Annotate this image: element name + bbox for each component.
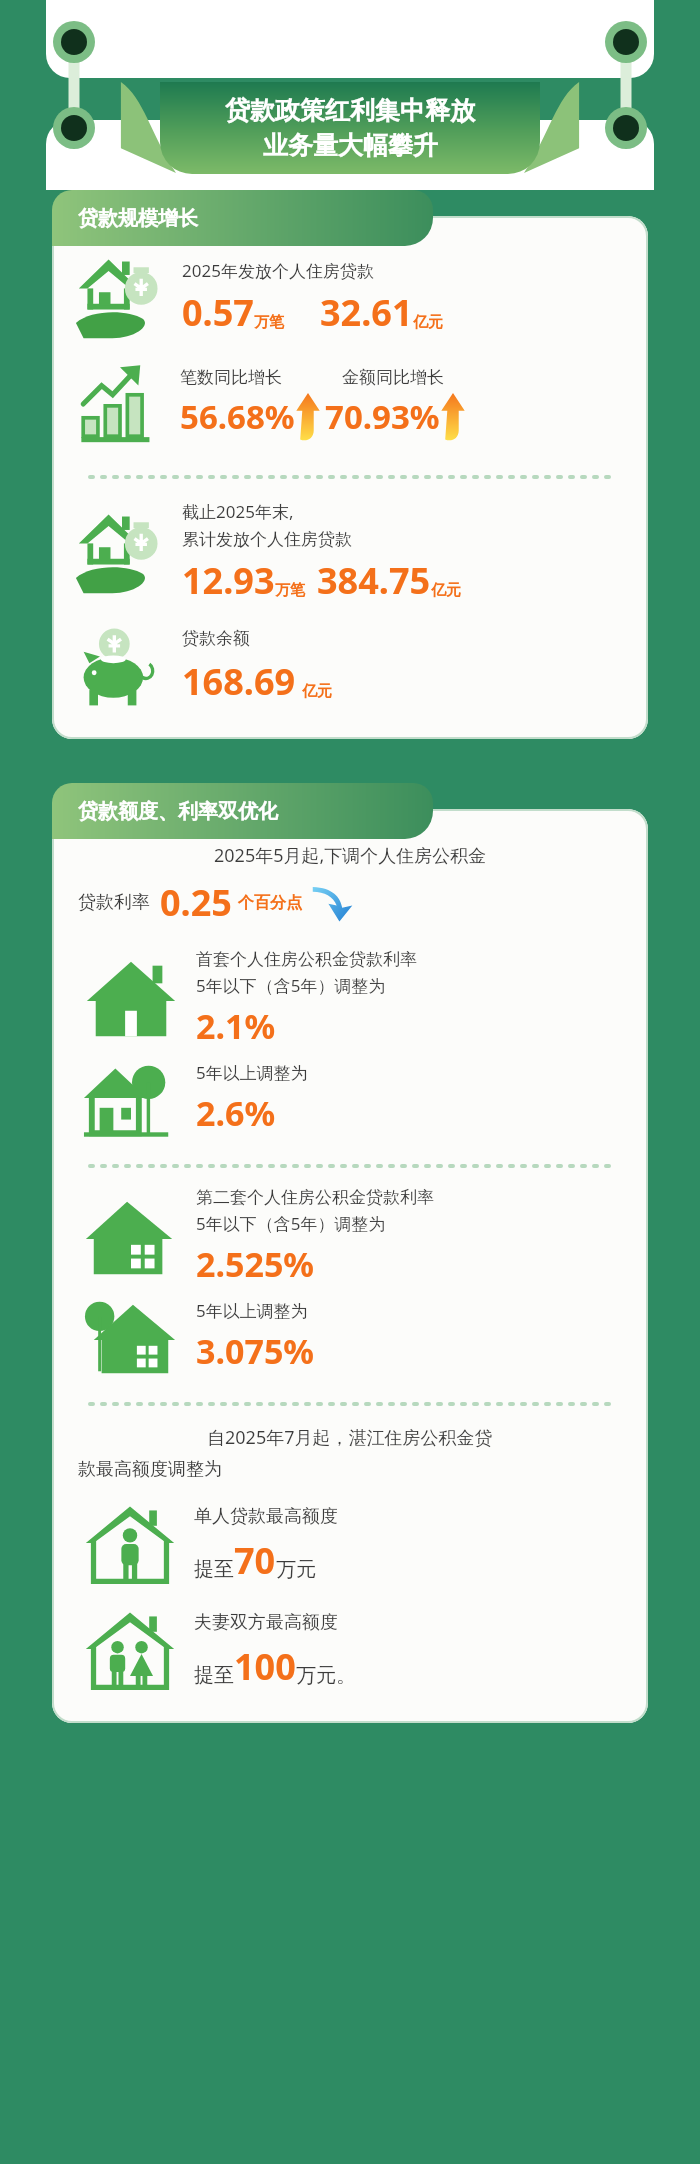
other: 单人贷款最高额度 [82, 1497, 178, 1593]
staticText: 笔数同比增长 [180, 367, 282, 388]
staticText: 56.68% [180, 394, 295, 439]
staticText: 提至 [194, 1663, 234, 1688]
button[interactable]: 单人贷款最高额度 [82, 1497, 628, 1593]
other: 住房贷款 [74, 250, 170, 346]
staticText: 384.75 [317, 556, 431, 605]
button[interactable]: 房屋 [82, 949, 628, 1049]
staticText: 5年以下（含5年）调整为 [196, 974, 386, 997]
button[interactable]: 房屋 [82, 1287, 628, 1385]
staticText: 贷款规模增长 [78, 206, 198, 231]
button[interactable]: 贷款额度、利率双优化 [52, 783, 433, 839]
staticText: 2025年5月起,下调个人住房公积金 [214, 843, 487, 868]
button[interactable]: 房屋 [82, 1049, 628, 1147]
other: 房屋 [82, 1188, 180, 1286]
staticText: 业务量大幅攀升 [263, 130, 438, 161]
staticText: 0.57 [182, 288, 254, 337]
staticText: 5年以上调整为 [196, 1299, 308, 1322]
staticText: 5年以下（含5年）调整为 [196, 1212, 386, 1235]
other: 增长图表 [74, 358, 166, 450]
staticText: 提至 [194, 1557, 234, 1582]
staticText: 单人贷款最高额度 [194, 1505, 338, 1528]
staticText: 贷款余额 [182, 628, 250, 649]
staticText: 12.93 [182, 556, 275, 605]
staticText: 贷款利率 [78, 891, 150, 914]
button[interactable]: 累计住房贷款 [74, 500, 628, 605]
button[interactable]: 夫妻双方最高额度 [82, 1603, 628, 1699]
staticText: 70 [234, 1536, 276, 1585]
button[interactable]: 房屋 [82, 1187, 628, 1287]
staticText: 万元 [276, 1557, 316, 1582]
staticText: 万元。 [296, 1663, 356, 1688]
other: 房屋 [82, 1287, 180, 1385]
staticText: 贷款额度、利率双优化 [78, 799, 278, 824]
staticText: 32.61 [320, 288, 413, 337]
staticText: 自2025年7月起，湛江住房公积金贷 [207, 1425, 493, 1450]
staticText: 万笔 [254, 313, 284, 332]
staticText: 2.1% [196, 1003, 276, 1049]
button[interactable]: 住房贷款 [74, 250, 628, 346]
other: 累计住房贷款 [74, 505, 170, 601]
staticText: 个百分点 [238, 893, 302, 913]
staticText: 截止2025年末, [182, 500, 294, 523]
staticText: 累计发放个人住房贷款 [182, 529, 352, 550]
staticText: 2.6% [196, 1090, 276, 1136]
staticText: 亿元 [413, 313, 443, 332]
staticText: 第二套个人住房公积金贷款利率 [196, 1187, 434, 1208]
other: 房屋 [82, 950, 180, 1048]
staticText: 首套个人住房公积金贷款利率 [196, 949, 417, 970]
staticText: 0.25 [160, 878, 232, 927]
other: 房屋 [82, 1049, 180, 1147]
staticText: 2.525% [196, 1241, 315, 1287]
staticText: 100 [234, 1642, 296, 1691]
staticText: 70.93% [325, 394, 440, 439]
staticText: 2025年发放个人住房贷款 [182, 259, 374, 282]
staticText: 金额同比增长 [342, 367, 444, 388]
staticText: 3.075% [196, 1328, 315, 1374]
staticText: 贷款政策红利集中释放 [225, 95, 475, 126]
other: 贷款余额 [74, 619, 170, 715]
staticText: 款最高额度调整为 [78, 1458, 222, 1481]
staticText: 夫妻双方最高额度 [194, 1611, 338, 1634]
button[interactable]: 贷款余额 [74, 619, 628, 715]
staticText: 5年以上调整为 [196, 1061, 308, 1084]
staticText: 亿元 [431, 581, 461, 600]
staticText: 万笔 [275, 581, 305, 600]
button[interactable]: 增长图表 [74, 358, 634, 450]
staticText: 亿元 [302, 682, 332, 701]
button[interactable]: 贷款规模增长 [52, 190, 433, 246]
other: 夫妻双方最高额度 [82, 1603, 178, 1699]
staticText: 168.69 [182, 657, 296, 706]
